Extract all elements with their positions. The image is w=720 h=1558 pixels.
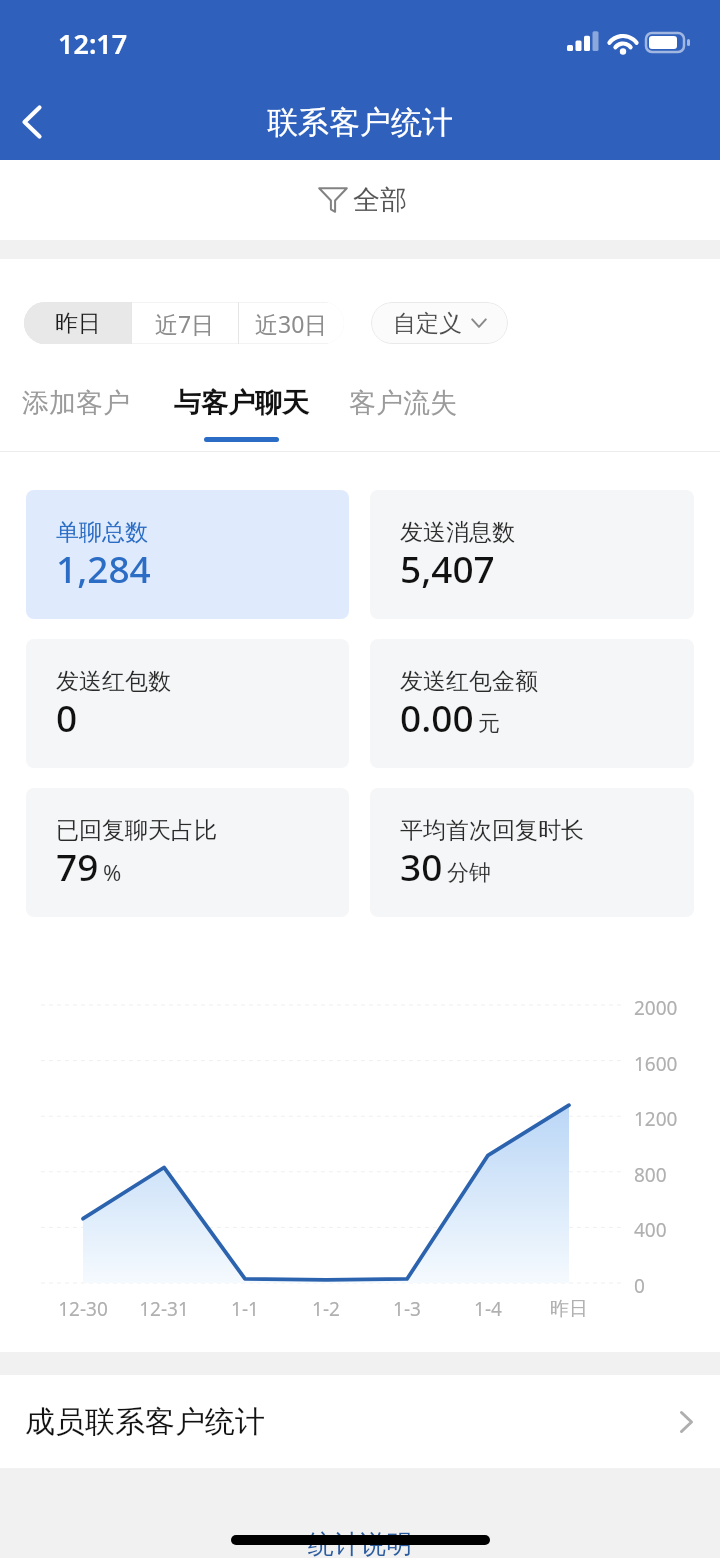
staticText: 客户流失: [349, 386, 457, 420]
staticText: 1200: [634, 1106, 678, 1132]
button[interactable]: 近30日: [239, 303, 344, 343]
staticText: 1-2: [312, 1296, 340, 1322]
button[interactable]: 发送红包金额: [370, 639, 694, 768]
staticText: 1-3: [393, 1296, 421, 1322]
button[interactable]: 成员联系客户统计: [0, 1375, 720, 1468]
staticText: 自定义: [393, 309, 462, 338]
button[interactable]: 客户流失: [349, 373, 457, 451]
staticText: 发送红包金额: [400, 667, 538, 696]
button[interactable]: 自定义: [371, 302, 508, 344]
staticText: 已回复聊天占比: [56, 816, 217, 845]
staticText: 12:17: [58, 25, 128, 62]
staticText: 400: [634, 1217, 667, 1243]
staticText: 800: [634, 1162, 667, 1188]
staticText: 1,284: [56, 543, 151, 593]
staticText: 0: [634, 1273, 645, 1299]
staticText: 单聊总数: [56, 518, 148, 547]
staticText: 12-31: [139, 1296, 189, 1322]
staticText: 5,407: [400, 543, 495, 593]
staticText: 发送消息数: [400, 518, 515, 547]
staticText: 2000: [634, 995, 678, 1021]
button[interactable]: 昨日: [24, 302, 131, 344]
button[interactable]: 全部: [318, 183, 407, 217]
staticText: 1-4: [474, 1296, 502, 1322]
staticText: 近30日: [255, 308, 328, 339]
button[interactable]: 单聊总数: [26, 490, 349, 619]
staticText: 1600: [634, 1051, 678, 1077]
staticText: 近7日: [155, 308, 215, 339]
button[interactable]: 与客户聊天: [174, 373, 309, 451]
staticText: 0.00: [400, 692, 474, 742]
staticText: 79: [56, 841, 99, 891]
staticText: 联系客户统计: [267, 103, 453, 142]
staticText: 分钟: [447, 859, 491, 887]
staticText: 与客户聊天: [174, 386, 309, 420]
staticText: 昨日: [55, 309, 101, 338]
staticText: 12-30: [58, 1296, 108, 1322]
button[interactable]: 平均首次回复时长: [370, 788, 694, 917]
staticText: %: [103, 857, 122, 887]
staticText: 元: [478, 710, 500, 738]
button[interactable]: 发送红包数: [26, 639, 349, 768]
staticText: 0: [56, 692, 78, 742]
staticText: 添加客户: [22, 386, 130, 420]
staticText: 1-1: [231, 1296, 259, 1322]
staticText: 平均首次回复时长: [400, 816, 584, 845]
button[interactable]: Back: [0, 90, 64, 154]
button[interactable]: 添加客户: [22, 373, 130, 451]
staticText: 统计说明: [308, 1528, 412, 1558]
button[interactable]: 发送消息数: [370, 490, 694, 619]
staticText: 30: [400, 841, 443, 891]
staticText: 昨日: [550, 1297, 588, 1321]
staticText: 全部: [353, 183, 407, 217]
button[interactable]: 已回复聊天占比: [26, 788, 349, 917]
staticText: 发送红包数: [56, 667, 171, 696]
staticText: 成员联系客户统计: [25, 1403, 265, 1441]
button[interactable]: 近7日: [132, 303, 238, 343]
